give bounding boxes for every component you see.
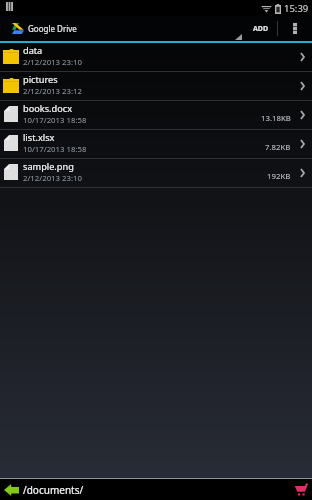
- staticText: 192KB: [267, 171, 291, 182]
- button[interactable]: More options: [278, 16, 312, 41]
- staticText: 2/12/2013 23:12: [23, 86, 82, 97]
- staticText: 2/12/2013 23:10: [23, 57, 82, 68]
- button[interactable]: sample.png: [0, 159, 312, 187]
- button[interactable]: Cart: [291, 479, 311, 500]
- staticText: ADD: [253, 24, 269, 34]
- button[interactable]: Back: [4, 484, 19, 496]
- staticText: 13.18KB: [261, 113, 291, 124]
- button[interactable]: list.xlsx: [0, 130, 312, 158]
- button[interactable]: books.docx: [0, 101, 312, 129]
- staticText: 7.82KB: [265, 142, 291, 153]
- staticText: 10/17/2013 18:58: [23, 144, 87, 155]
- button[interactable]: ADD: [245, 16, 277, 41]
- button[interactable]: data: [0, 43, 312, 71]
- button[interactable]: pictures: [0, 72, 312, 100]
- staticText: books.docx: [23, 102, 73, 115]
- staticText: Google Drive: [28, 23, 77, 34]
- staticText: 10/17/2013 18:58: [23, 115, 87, 126]
- staticText: /documents/: [23, 483, 84, 497]
- staticText: 15:39: [284, 2, 309, 15]
- staticText: pictures: [23, 73, 58, 86]
- staticText: list.xlsx: [23, 131, 55, 144]
- staticText: sample.png: [23, 160, 74, 173]
- staticText: data: [23, 44, 43, 57]
- staticText: 2/12/2013 23:10: [23, 173, 82, 184]
